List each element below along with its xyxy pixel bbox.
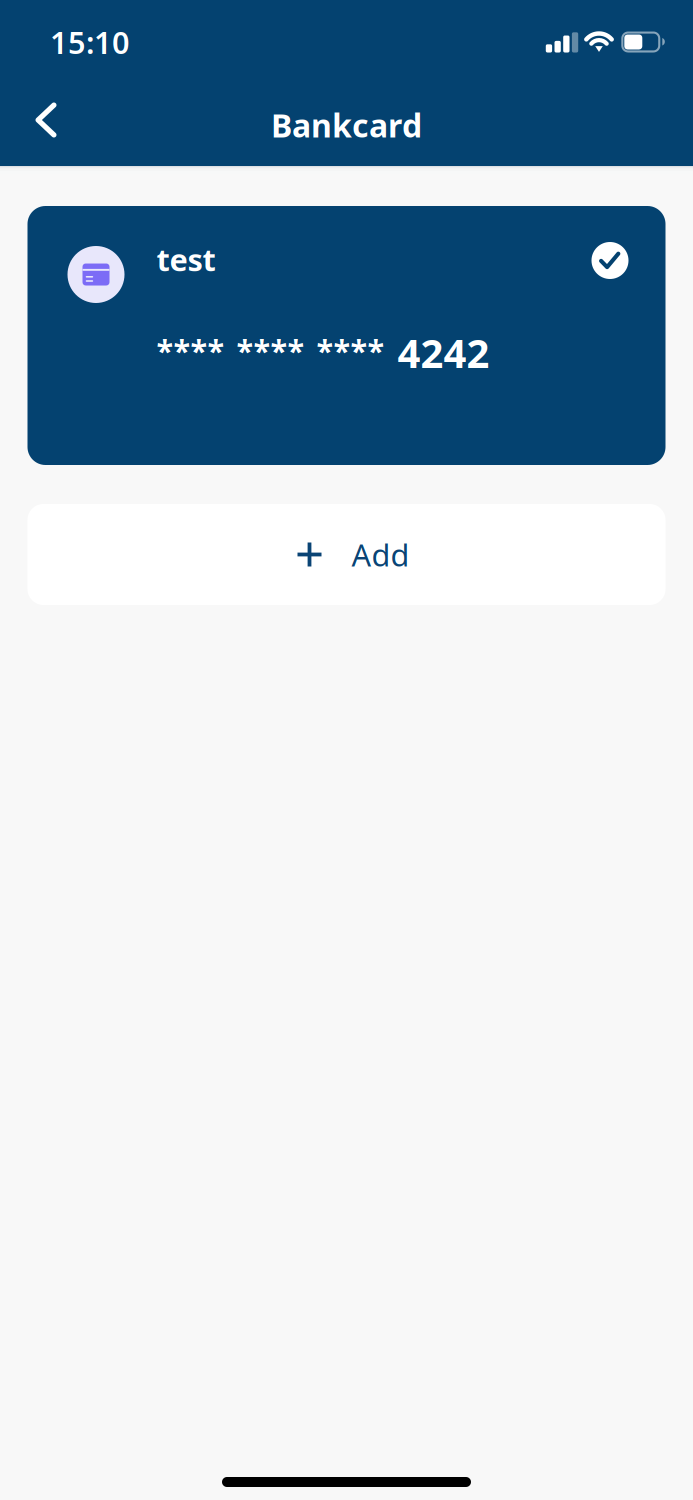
staticText: **** (156, 330, 224, 370)
staticText: test (156, 239, 215, 280)
button[interactable]: Add (27, 504, 665, 605)
staticText: **** (316, 330, 384, 370)
staticText: 15:10 (50, 22, 130, 62)
staticText: **** (236, 330, 304, 370)
button[interactable]: Back (13, 92, 81, 158)
staticText: Add (351, 534, 409, 575)
button[interactable]: test (27, 206, 665, 465)
staticText: Bankcard (271, 104, 422, 146)
staticText: 4242 (397, 326, 489, 379)
